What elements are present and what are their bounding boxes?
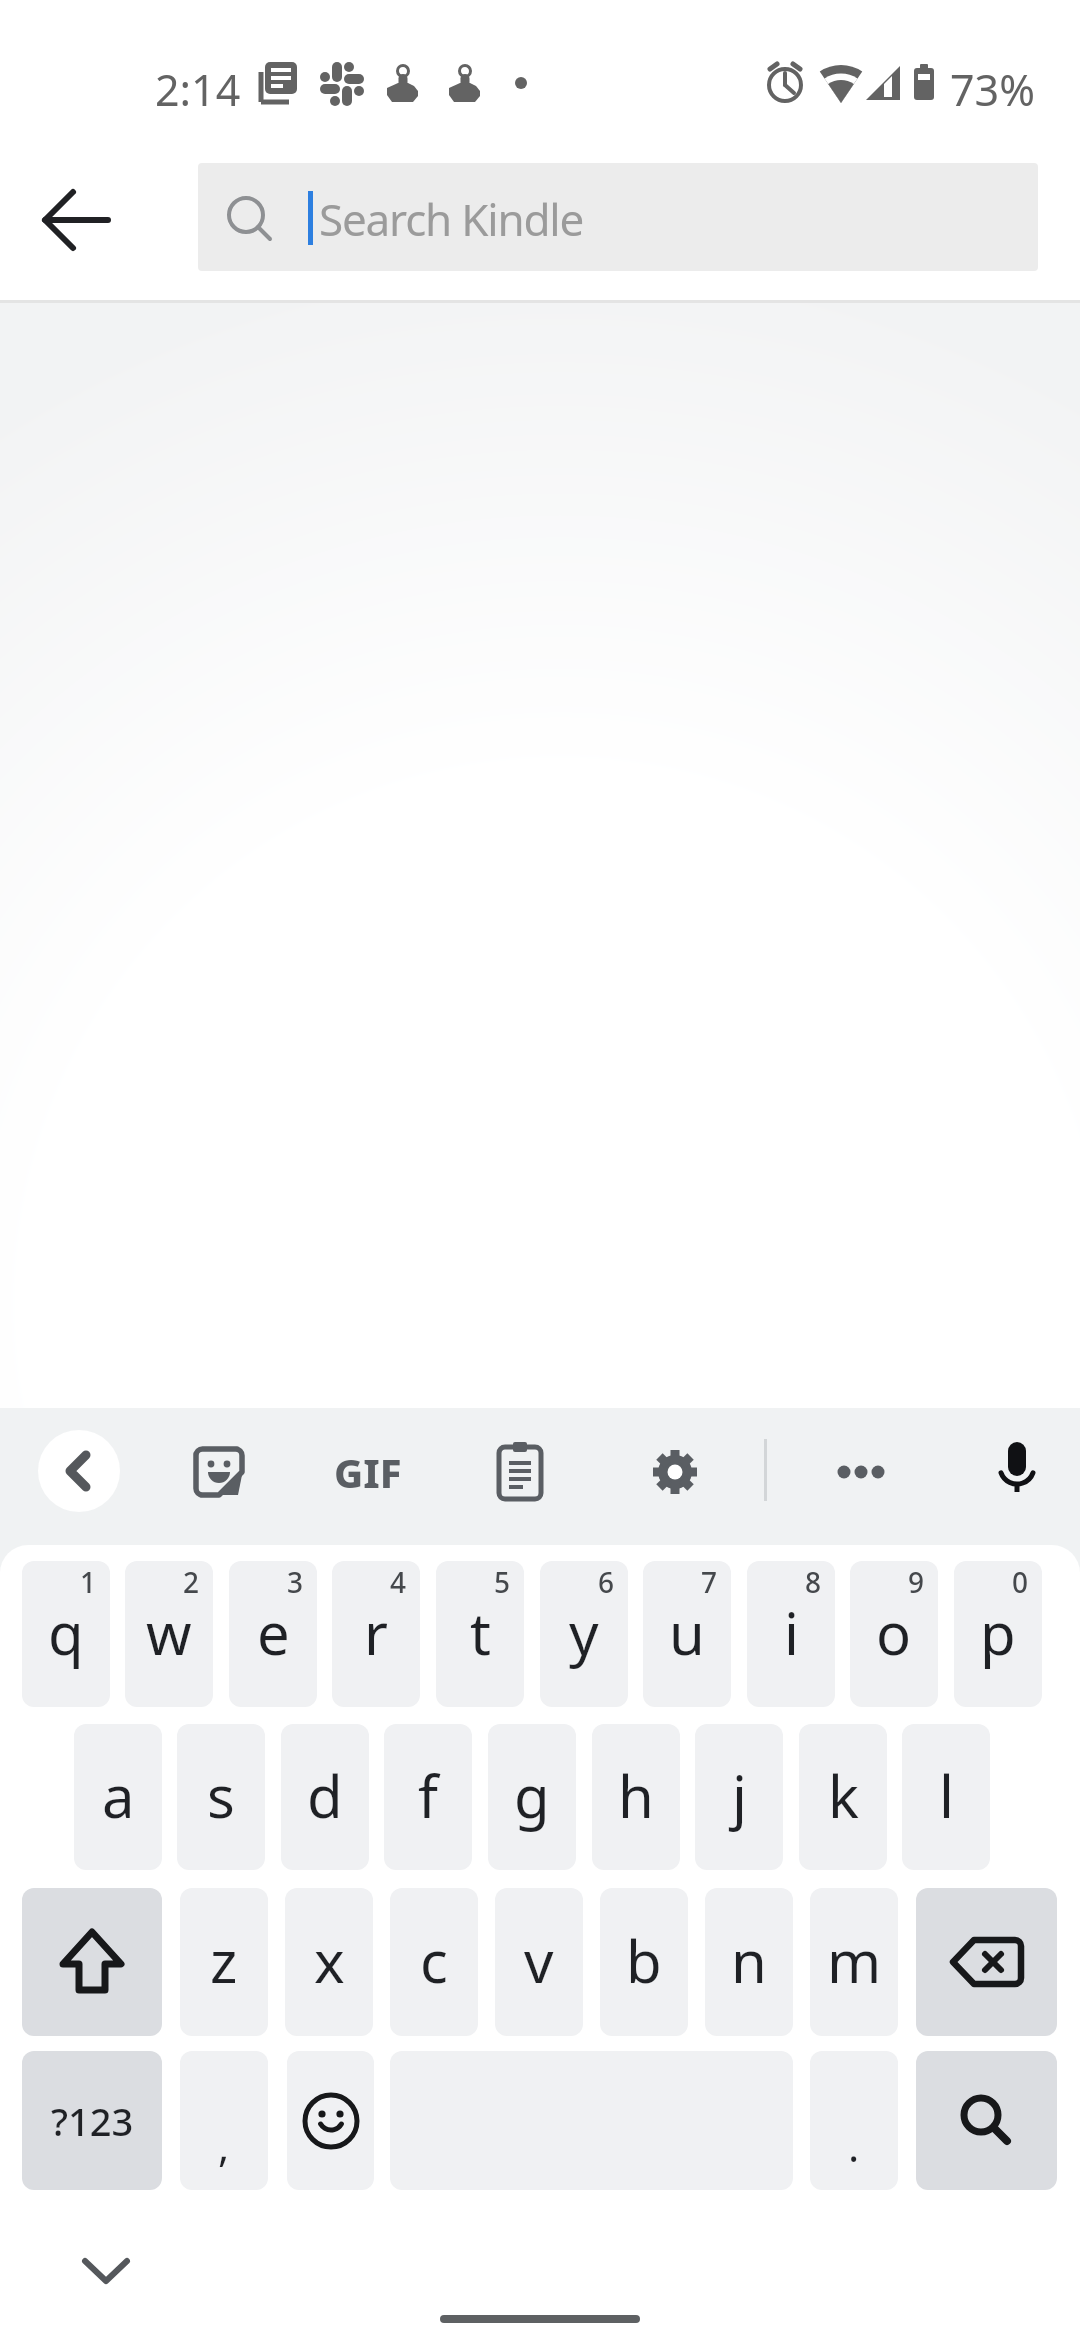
staticText: v: [524, 1921, 554, 2000]
staticText: s: [207, 1756, 235, 1835]
button[interactable]: w: [125, 1561, 213, 1707]
button[interactable]: z: [180, 1888, 268, 2036]
button[interactable]: [66, 2243, 146, 2299]
staticText: 0: [1012, 1563, 1029, 1601]
staticText: .: [848, 2117, 860, 2174]
staticText: t: [470, 1593, 491, 1672]
staticText: 4: [390, 1563, 407, 1601]
staticText: 1: [80, 1563, 97, 1601]
staticText: u: [669, 1593, 705, 1672]
staticText: w: [146, 1593, 192, 1672]
staticText: a: [102, 1756, 135, 1835]
button[interactable]: f: [384, 1724, 472, 1870]
staticText: 5: [494, 1563, 511, 1601]
button[interactable]: [916, 1888, 1057, 2036]
button[interactable]: Search Kindle: [198, 163, 1038, 271]
button[interactable]: [489, 1439, 551, 1501]
staticText: r: [364, 1593, 388, 1672]
button[interactable]: g: [488, 1724, 576, 1870]
button[interactable]: t: [436, 1561, 524, 1707]
staticText: n: [731, 1921, 767, 2000]
button[interactable]: GIF: [330, 1444, 406, 1500]
button[interactable]: o: [850, 1561, 938, 1707]
button[interactable]: ?123: [22, 2051, 162, 2190]
button[interactable]: k: [799, 1724, 887, 1870]
button[interactable]: u: [643, 1561, 731, 1707]
button[interactable]: n: [705, 1888, 793, 2036]
button[interactable]: e: [229, 1561, 317, 1707]
staticText: 2:14: [155, 60, 241, 119]
button[interactable]: [916, 2051, 1057, 2190]
button[interactable]: [38, 1430, 120, 1512]
staticText: f: [418, 1756, 438, 1835]
button[interactable]: [22, 1888, 162, 2036]
button[interactable]: y: [540, 1561, 628, 1707]
staticText: p: [980, 1593, 1016, 1672]
staticText: c: [420, 1921, 448, 2000]
button[interactable]: l: [902, 1724, 990, 1870]
button[interactable]: v: [495, 1888, 583, 2036]
staticText: GIF: [334, 1445, 402, 1499]
staticText: 9: [908, 1563, 925, 1601]
button[interactable]: j: [695, 1724, 783, 1870]
staticText: 8: [805, 1563, 822, 1601]
button[interactable]: .: [810, 2051, 898, 2190]
staticText: h: [618, 1756, 654, 1835]
staticText: g: [514, 1756, 550, 1835]
staticText: ,: [218, 2117, 230, 2174]
staticText: y: [569, 1593, 599, 1672]
staticText: 2: [183, 1563, 200, 1601]
staticText: 6: [598, 1563, 615, 1601]
staticText: x: [314, 1921, 345, 2000]
button[interactable]: m: [810, 1888, 898, 2036]
button[interactable]: i: [747, 1561, 835, 1707]
button[interactable]: a: [74, 1724, 162, 1870]
button[interactable]: [287, 2051, 374, 2190]
staticText: z: [210, 1921, 238, 2000]
button[interactable]: x: [285, 1888, 373, 2036]
staticText: l: [939, 1756, 954, 1835]
button[interactable]: [188, 1441, 250, 1503]
staticText: b: [626, 1921, 662, 2000]
button[interactable]: [20, 195, 132, 245]
staticText: m: [827, 1921, 882, 2000]
staticText: j: [732, 1756, 747, 1835]
button[interactable]: [644, 1441, 706, 1503]
staticText: d: [307, 1756, 343, 1835]
staticText: Search Kindle: [319, 189, 584, 249]
staticText: o: [876, 1593, 912, 1672]
staticText: q: [48, 1593, 84, 1672]
button[interactable]: s: [177, 1724, 265, 1870]
button[interactable]: r: [332, 1561, 420, 1707]
staticText: i: [784, 1593, 799, 1672]
staticText: k: [828, 1756, 859, 1835]
button[interactable]: q: [22, 1561, 110, 1707]
staticText: 3: [287, 1563, 304, 1601]
button[interactable]: ,: [180, 2051, 268, 2190]
button[interactable]: p: [954, 1561, 1042, 1707]
button[interactable]: [986, 1436, 1048, 1498]
staticText: ?123: [51, 2095, 134, 2147]
button[interactable]: h: [592, 1724, 680, 1870]
staticText: 73%: [950, 60, 1035, 119]
button[interactable]: d: [281, 1724, 369, 1870]
button[interactable]: [822, 1444, 900, 1500]
staticText: e: [257, 1593, 290, 1672]
button[interactable]: b: [600, 1888, 688, 2036]
staticText: 7: [701, 1563, 718, 1601]
button[interactable]: c: [390, 1888, 478, 2036]
